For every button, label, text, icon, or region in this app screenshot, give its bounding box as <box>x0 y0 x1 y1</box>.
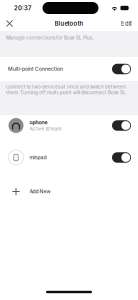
staticText: Manage connections for Bose SL Plus. <box>6 35 93 41</box>
staticText: Bluetooth <box>54 20 83 27</box>
button[interactable]: Close <box>0 16 19 31</box>
staticText: ophone <box>29 119 47 126</box>
staticText: Connect to two devices at once and switc… <box>6 84 127 95</box>
button[interactable]: minpad <box>0 148 138 167</box>
staticText: minpad <box>29 154 46 160</box>
staticText: Add New <box>29 188 50 194</box>
staticText: Edit <box>121 20 132 27</box>
button[interactable]: ophone <box>0 116 138 135</box>
staticText: Multi-point Connection <box>8 66 63 72</box>
staticText: 20:37 <box>14 4 31 12</box>
staticText: Active stream <box>29 126 61 132</box>
button[interactable]: Edit <box>116 16 137 31</box>
button[interactable]: Add New <box>0 183 138 200</box>
